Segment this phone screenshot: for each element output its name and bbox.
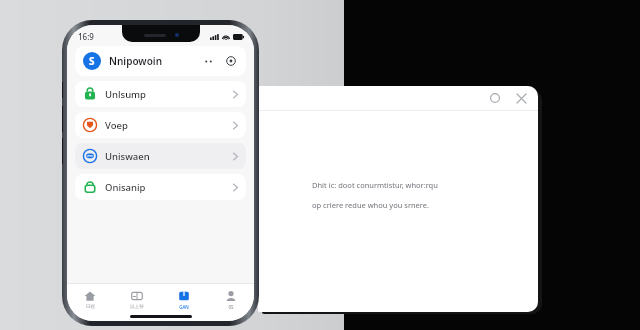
- button[interactable]: Onisanip: [75, 174, 246, 200]
- staticText: op crlere redue whou you srnere.: [312, 200, 430, 210]
- staticText: 日程: [86, 304, 95, 310]
- staticText: Onisanip: [105, 181, 146, 194]
- button[interactable]: S: [75, 46, 246, 76]
- staticText: Nnipowoin: [109, 54, 163, 68]
- staticText: Voep: [105, 119, 128, 132]
- staticText: 0S: [228, 304, 234, 310]
- button[interactable]: Unlsump: [75, 81, 246, 107]
- button[interactable]: More: [201, 54, 215, 68]
- staticText: Unlsump: [105, 88, 146, 101]
- button[interactable]: Uniswaen: [75, 143, 246, 169]
- staticText: GAN: [179, 304, 189, 310]
- staticText: 16:9: [78, 31, 94, 42]
- staticText: Uniswaen: [105, 150, 150, 163]
- button[interactable]: 日程: [67, 288, 113, 310]
- staticText: 以上智: [130, 304, 144, 310]
- button[interactable]: Voep: [75, 112, 246, 138]
- button[interactable]: GAN: [160, 288, 207, 310]
- button[interactable]: 以上智: [113, 288, 160, 310]
- button[interactable]: Close: [512, 89, 530, 107]
- button[interactable]: Settings: [224, 54, 238, 68]
- button[interactable]: 0S: [207, 288, 254, 310]
- staticText: S: [89, 54, 95, 68]
- button[interactable]: Refresh: [486, 89, 504, 107]
- staticText: Dhit ic: doot conurmtistur, whor:rqu: [312, 180, 438, 190]
